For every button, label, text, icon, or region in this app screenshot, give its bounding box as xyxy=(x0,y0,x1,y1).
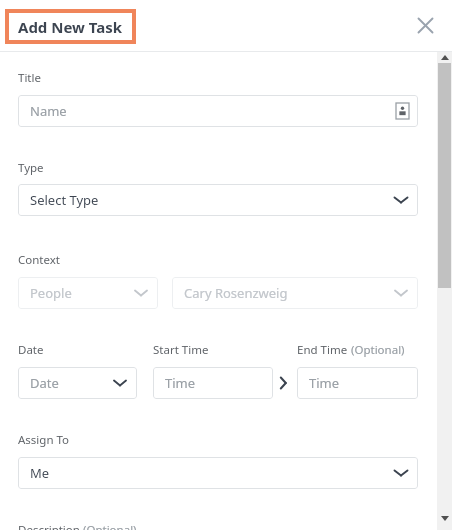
staticText: Date xyxy=(18,342,44,358)
staticText: Type xyxy=(18,160,44,176)
staticText: Start Time xyxy=(153,342,209,358)
button[interactable]: Close xyxy=(409,9,441,41)
button[interactable]: Name xyxy=(18,95,418,127)
button[interactable]: Add New Task xyxy=(9,13,132,40)
staticText: Context xyxy=(18,252,60,268)
staticText: (Optional) xyxy=(348,342,405,358)
staticText: Description xyxy=(18,522,80,530)
staticText: Cary Rosenzweig xyxy=(184,284,288,302)
button[interactable]: Scroll down xyxy=(437,513,452,524)
staticText: Title xyxy=(18,70,41,86)
button[interactable]: Me xyxy=(18,457,418,489)
staticText: Me xyxy=(30,464,50,482)
staticText: Time xyxy=(165,374,196,392)
staticText: (Optional) xyxy=(80,522,137,530)
button[interactable]: Select Type xyxy=(18,184,418,216)
staticText: People xyxy=(30,284,72,302)
button[interactable]: Scroll up xyxy=(437,52,452,63)
staticText: End Time xyxy=(297,342,348,358)
staticText: Date xyxy=(30,374,59,392)
button[interactable]: Date xyxy=(18,367,137,399)
staticText: Add New Task xyxy=(18,17,123,37)
staticText: Time xyxy=(309,374,340,392)
staticText: Assign To xyxy=(18,432,70,448)
button[interactable]: Cary Rosenzweig xyxy=(172,277,418,309)
button[interactable]: Time xyxy=(297,367,418,399)
staticText: Name xyxy=(30,102,67,120)
staticText: Select Type xyxy=(30,191,99,209)
button[interactable]: Time xyxy=(153,367,273,399)
button[interactable]: People xyxy=(18,277,158,309)
